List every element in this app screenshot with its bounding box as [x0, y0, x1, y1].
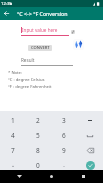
button[interactable]: Enter	[77, 158, 103, 173]
staticText: 7	[11, 146, 15, 155]
button[interactable]	[0, 158, 25, 173]
staticText: 1	[11, 116, 15, 125]
button[interactable]: 0	[25, 158, 51, 173]
button[interactable]: 6	[51, 128, 77, 143]
button[interactable]: 9	[51, 143, 77, 158]
button[interactable]: Home	[43, 170, 59, 183]
button[interactable]: 5	[25, 128, 51, 143]
other: Backspace	[87, 148, 94, 153]
staticText: Input value here	[22, 27, 58, 33]
button[interactable]: 1	[0, 113, 25, 128]
staticText: * Note:	[8, 70, 23, 76]
staticText: 12:35	[1, 1, 12, 7]
button[interactable]: Navigate up	[0, 7, 13, 20]
button[interactable]: 8	[25, 143, 51, 158]
button[interactable]: Backspace	[77, 143, 103, 158]
button[interactable]: Hide keyboard	[11, 170, 27, 183]
button[interactable]	[51, 158, 77, 173]
button[interactable]: 7	[0, 143, 25, 158]
staticText: Result	[21, 57, 35, 63]
button[interactable]: CONVERT	[28, 45, 52, 51]
staticText: 4	[11, 131, 15, 140]
staticText: 2	[36, 116, 40, 125]
button[interactable]	[77, 113, 103, 128]
staticText: 0	[36, 161, 40, 170]
staticText: 5	[36, 131, 40, 140]
button[interactable]: Translate	[73, 39, 84, 50]
staticText: 8	[36, 146, 40, 155]
button[interactable]: 4	[0, 128, 25, 143]
button[interactable]: Swap conversion direction	[70, 29, 76, 35]
other: Space	[87, 135, 93, 137]
staticText: 9	[62, 146, 66, 155]
button[interactable]: 3	[51, 113, 77, 128]
button[interactable]: Recent apps	[75, 170, 91, 183]
button[interactable]: Space	[77, 128, 103, 143]
staticText: 6	[62, 131, 66, 140]
staticText: 3	[62, 116, 66, 125]
staticText: CONVERT	[31, 45, 50, 51]
staticText: °C : degree Celsius	[8, 77, 45, 83]
button[interactable]: 2	[25, 113, 51, 128]
staticText: °C <-> °F Conversion	[17, 10, 68, 17]
other: Enter	[86, 161, 95, 170]
staticText: °F : degree Fahrenheit	[8, 84, 52, 90]
